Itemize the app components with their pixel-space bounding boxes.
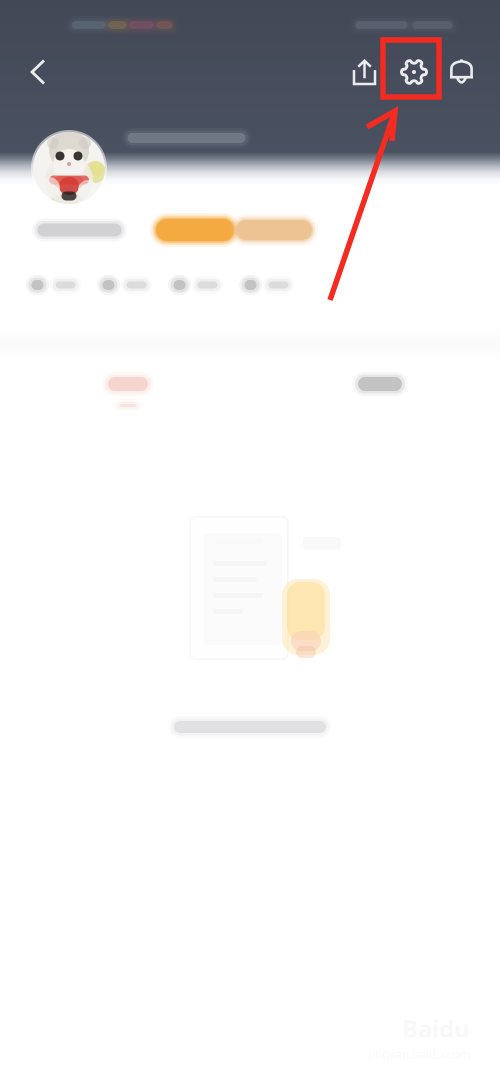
button[interactable]: Follow <box>150 213 240 247</box>
button[interactable]: Posts tab <box>96 372 160 416</box>
button[interactable]: Notifications <box>438 52 485 92</box>
button[interactable]: Statistic <box>26 275 81 295</box>
button[interactable]: Send message <box>230 214 318 246</box>
button[interactable]: Settings <box>391 49 437 95</box>
button[interactable]: Back <box>22 53 54 90</box>
button[interactable]: Statistic <box>168 275 223 295</box>
button[interactable]: Collections tab <box>348 372 412 416</box>
button[interactable]: Statistic <box>239 275 294 295</box>
button[interactable]: Statistic <box>97 275 152 295</box>
button[interactable]: Share <box>342 53 387 91</box>
button[interactable]: Profile photo <box>31 130 107 206</box>
